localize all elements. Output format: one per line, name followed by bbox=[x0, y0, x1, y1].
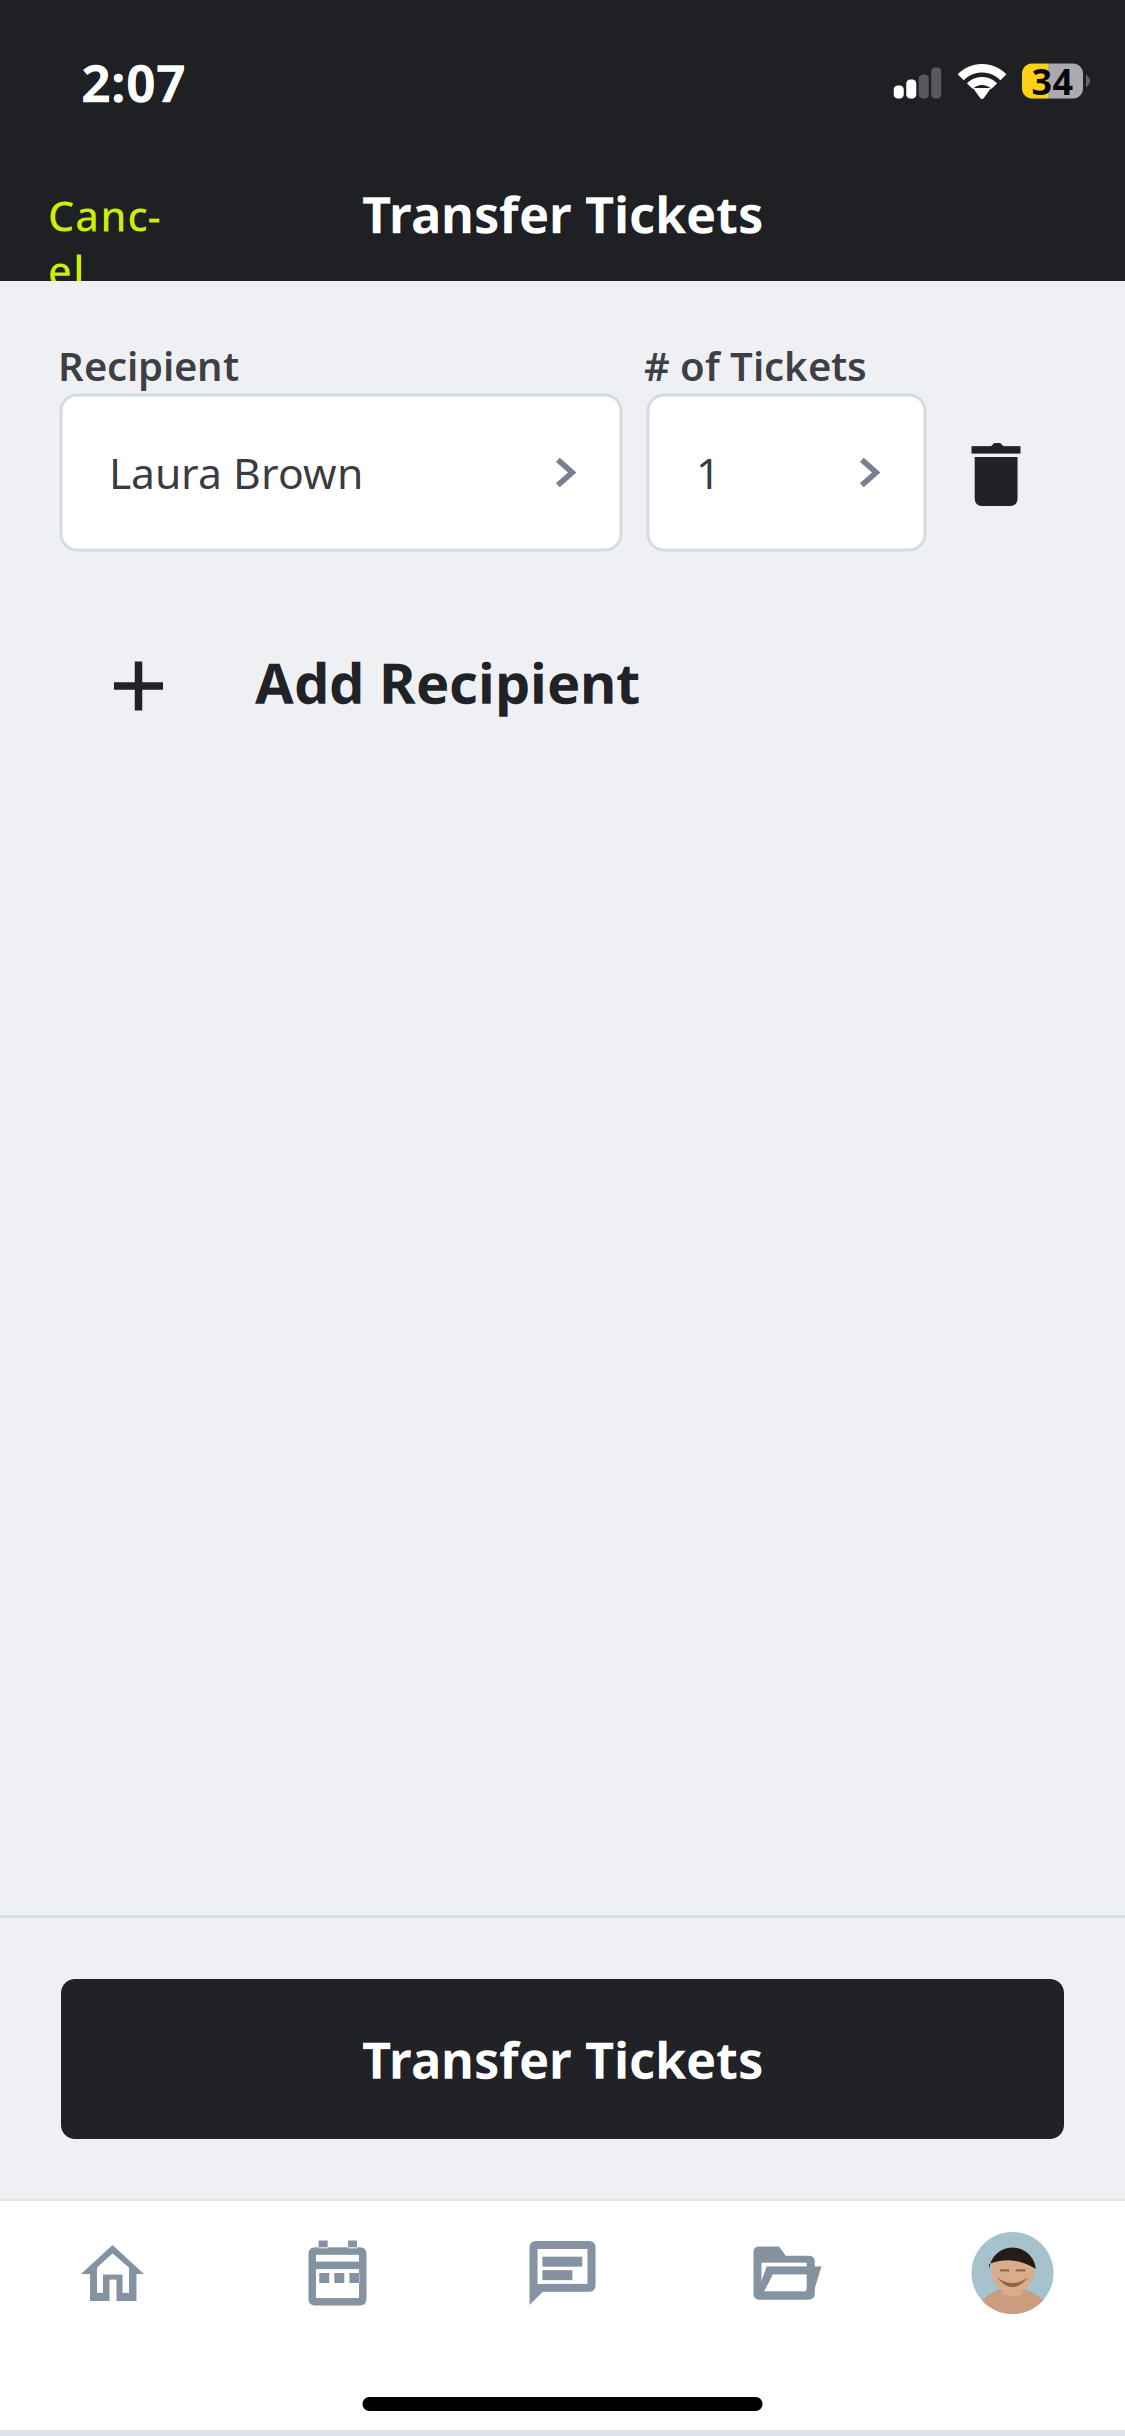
button[interactable]: Profile bbox=[900, 2225, 1125, 2321]
staticText: Transfer Tickets bbox=[362, 180, 763, 247]
button[interactable]: Home bbox=[0, 2225, 225, 2321]
button[interactable]: Calendar bbox=[225, 2225, 450, 2321]
staticText: Recipient bbox=[58, 339, 239, 392]
button[interactable]: Transfer Tickets bbox=[61, 1979, 1064, 2139]
staticText: 34 bbox=[1031, 57, 1073, 105]
button[interactable]: Add Recipient bbox=[0, 630, 1125, 742]
button[interactable]: Cancel bbox=[0, 158, 233, 273]
staticText: # of Tickets bbox=[644, 339, 867, 392]
button[interactable]: Messages bbox=[450, 2225, 675, 2321]
staticText: Cancel bbox=[48, 188, 185, 243]
staticText: 1 bbox=[696, 444, 720, 501]
button[interactable]: Files bbox=[675, 2225, 900, 2321]
staticText: Add Recipient bbox=[255, 645, 640, 719]
button[interactable]: 1 bbox=[648, 395, 925, 550]
staticText: Laura Brown bbox=[109, 444, 363, 501]
staticText: 2:07 bbox=[81, 47, 186, 117]
button[interactable]: Remove recipient bbox=[925, 337, 1067, 550]
staticText: Transfer Tickets bbox=[362, 2025, 763, 2093]
button[interactable]: Laura Brown bbox=[61, 395, 621, 550]
